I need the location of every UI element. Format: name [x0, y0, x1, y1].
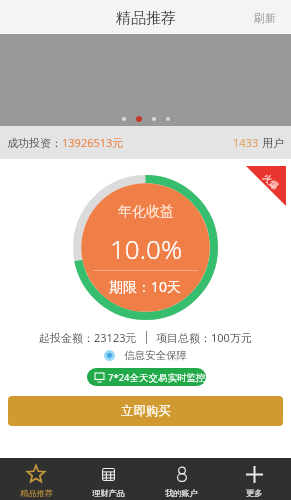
- button[interactable]: Promotion banner: [0, 34, 291, 126]
- button[interactable]: 精品推荐: [0, 458, 72, 500]
- staticText: 信息安全保障: [124, 349, 187, 362]
- staticText: 1433: [233, 135, 262, 150]
- staticText: 立即购买: [121, 403, 171, 419]
- staticText: 火爆: [261, 171, 281, 192]
- other: Hot product: [246, 166, 286, 206]
- staticText: 7*24全天交易实时监控: [108, 371, 206, 384]
- staticText: 成功投资：: [7, 136, 62, 150]
- button[interactable]: 7*24全天交易实时监控: [87, 368, 206, 386]
- staticText: 13926513元: [62, 135, 124, 150]
- button[interactable]: 刷新: [244, 4, 291, 32]
- button[interactable]: 我的账户: [145, 458, 218, 500]
- button[interactable]: 更多: [218, 458, 291, 500]
- staticText: 项目总额：100万元: [156, 330, 252, 345]
- button[interactable]: 立即购买: [8, 396, 283, 426]
- staticText: 精品推荐: [20, 488, 53, 498]
- staticText: 起投金额：23123元: [39, 330, 137, 345]
- staticText: 10.0%: [110, 231, 182, 266]
- staticText: 精品推荐: [116, 9, 176, 28]
- staticText: 用户: [262, 136, 284, 150]
- staticText: 理财产品: [92, 488, 125, 498]
- staticText: 更多: [246, 488, 263, 498]
- staticText: 期限：10天: [109, 277, 182, 296]
- staticText: 刷新: [254, 11, 276, 25]
- staticText: 年化收益: [118, 203, 174, 221]
- button[interactable]: 理财产品: [72, 458, 145, 500]
- staticText: 我的账户: [165, 488, 198, 498]
